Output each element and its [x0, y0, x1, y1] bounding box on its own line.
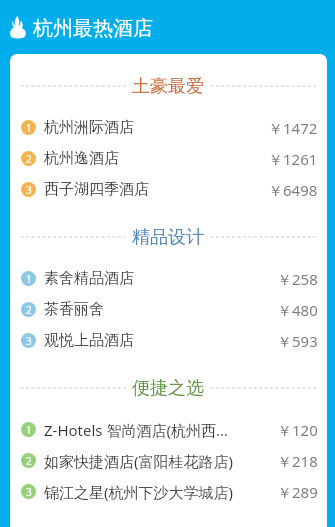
staticText: 杭州逸酒店: [44, 149, 119, 168]
staticText: 3: [26, 334, 32, 348]
other: Hot: [10, 16, 26, 39]
staticText: ￥120: [277, 420, 318, 440]
staticText: ￥218: [277, 451, 318, 471]
staticText: 茶香丽舍: [44, 300, 104, 319]
staticText: 3: [26, 485, 32, 499]
staticText: 西子湖四季酒店: [44, 180, 149, 199]
staticText: 2: [26, 152, 32, 166]
button[interactable]: 3: [10, 325, 327, 356]
staticText: 精品设计: [132, 226, 204, 249]
button[interactable]: 2: [10, 445, 327, 476]
staticText: 素舍精品酒店: [44, 269, 134, 288]
staticText: 锦江之星(杭州下沙大学城店): [44, 482, 234, 502]
staticText: ￥480: [277, 300, 318, 320]
button[interactable]: 1: [10, 263, 327, 294]
staticText: ￥289: [277, 482, 318, 502]
staticText: 2: [26, 454, 32, 468]
staticText: 1: [26, 272, 32, 286]
button[interactable]: 1: [10, 414, 327, 445]
staticText: ￥1472: [268, 118, 318, 138]
staticText: ￥593: [277, 331, 318, 351]
staticText: 3: [26, 183, 32, 197]
button[interactable]: 2: [10, 143, 327, 174]
staticText: ￥258: [277, 269, 318, 289]
staticText: 便捷之选: [132, 377, 204, 400]
staticText: ￥6498: [268, 180, 318, 200]
staticText: 观悦上品酒店: [44, 331, 134, 350]
button[interactable]: 3: [10, 476, 327, 507]
staticText: 土豪最爱: [132, 75, 204, 98]
staticText: Z-Hotels 智尚酒店(杭州西…: [44, 420, 228, 440]
staticText: ￥1261: [268, 149, 318, 169]
staticText: 如家快捷酒店(富阳桂花路店): [44, 451, 234, 471]
staticText: 1: [26, 121, 32, 135]
staticText: 杭州洲际酒店: [44, 118, 134, 137]
button[interactable]: 3: [10, 174, 327, 205]
staticText: 1: [26, 423, 32, 437]
button[interactable]: 1: [10, 112, 327, 143]
button[interactable]: 2: [10, 294, 327, 325]
staticText: 2: [26, 303, 32, 317]
staticText: 杭州最热酒店: [33, 16, 153, 41]
